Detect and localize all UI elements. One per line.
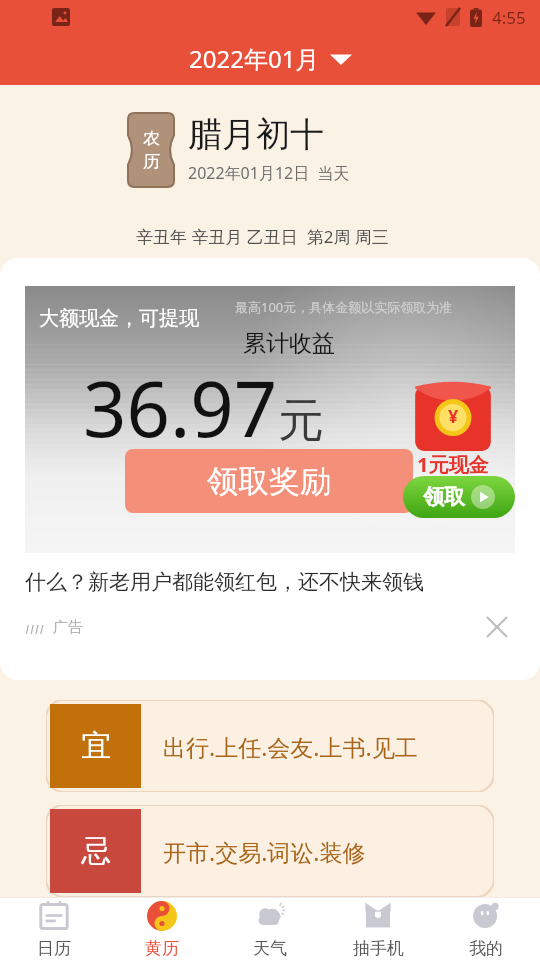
button[interactable]: 日历: [0, 898, 108, 960]
button[interactable]: 我的: [432, 898, 540, 960]
staticText: 累计收益: [243, 329, 335, 358]
staticText: 农: [143, 128, 160, 149]
button[interactable]: 抽手机: [324, 898, 432, 960]
staticText: 出行.上任.会友.上书.见工: [163, 731, 418, 762]
button[interactable]: 宜: [46, 700, 494, 792]
button[interactable]: 黄历: [108, 898, 216, 960]
staticText: 腊月初十: [188, 113, 324, 156]
staticText: 日历: [37, 938, 71, 959]
staticText: 忌: [81, 832, 111, 870]
button[interactable]: 天气: [216, 898, 324, 960]
staticText: 什么？新老用户都能领红包，还不快来领钱: [25, 569, 424, 595]
staticText: 辛丑年 辛丑月 乙丑日 第2周 周三: [136, 225, 389, 248]
staticText: 最高100元，具体金额以实际领取为准: [235, 298, 453, 316]
staticText: 1元现金: [417, 451, 489, 478]
staticText: 广告: [53, 618, 83, 637]
staticText: 我的: [469, 938, 503, 959]
staticText: 天气: [253, 938, 287, 959]
staticText: 36.97: [83, 356, 278, 460]
staticText: 元: [278, 392, 324, 450]
staticText: 历: [143, 151, 160, 172]
staticText: 4:55: [492, 6, 526, 29]
staticText: 2022年01月: [189, 42, 320, 75]
button[interactable]: 2022年01月: [181, 40, 360, 77]
staticText: ¥: [448, 404, 459, 429]
button[interactable]: 领取奖励: [125, 449, 413, 513]
button[interactable]: 关闭广告: [479, 609, 515, 645]
staticText: 宜: [81, 727, 111, 765]
staticText: 大额现金，可提现: [39, 306, 199, 331]
staticText: 2022年01月12日 当天: [188, 162, 350, 184]
staticText: 黄历: [145, 938, 179, 959]
staticText: 领取: [423, 484, 465, 510]
button[interactable]: 大额现金，可提现: [0, 258, 540, 680]
button[interactable]: 领取: [403, 476, 515, 518]
button[interactable]: 忌: [46, 805, 494, 897]
staticText: 抽手机: [353, 938, 404, 959]
staticText: 领取奖励: [207, 462, 331, 501]
staticText: 开市.交易.词讼.装修: [163, 836, 366, 867]
